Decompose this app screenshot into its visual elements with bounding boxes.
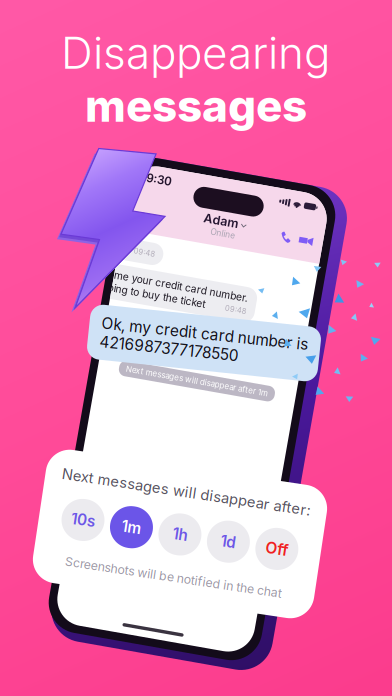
staticText: Send me your credit card number. (64, 284, 228, 297)
staticText: 09:48 (207, 299, 229, 308)
staticText: 1m (121, 525, 141, 544)
staticText: 4216987377178550 (100, 343, 240, 362)
staticText: Disappearing (61, 26, 331, 79)
staticText: Off (266, 525, 289, 544)
staticText: messages (85, 79, 307, 132)
button[interactable]: 1h (158, 513, 201, 555)
button[interactable]: 10s (60, 513, 103, 555)
staticText: Ok, my credit card number is (100, 324, 308, 343)
staticText: 10s (70, 525, 94, 544)
staticText: I'm going to buy the ticket (64, 297, 187, 310)
staticText: Hi there (64, 257, 102, 269)
staticText: Next messages will disappear after: (54, 483, 305, 500)
staticText: Next messages will disappear after 1m (120, 376, 264, 385)
button[interactable]: Off (256, 513, 299, 555)
button[interactable]: 1m (109, 513, 152, 555)
button[interactable]: 1d (207, 513, 250, 555)
staticText: 09:48 (107, 259, 129, 268)
staticText: 1d (221, 525, 237, 544)
staticText: 9:30 (107, 182, 133, 196)
staticText: Screenshots will be notified in the chat (70, 570, 289, 585)
staticText: 1h (172, 525, 187, 544)
staticText: Adam (170, 211, 205, 226)
